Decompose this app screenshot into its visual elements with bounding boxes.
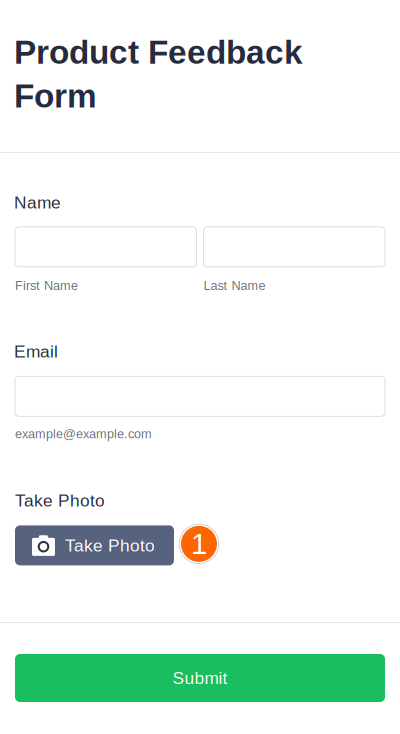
staticText: First Name: [15, 278, 78, 293]
staticText: Submit: [172, 668, 227, 688]
staticText: Product Feedback: [14, 33, 303, 71]
staticText: Email: [14, 342, 58, 361]
staticText: example@example.com: [15, 427, 152, 441]
staticText: Last Name: [203, 278, 265, 293]
button[interactable]: 1 photo attached: [179, 525, 219, 565]
staticText: Take Photo: [15, 491, 105, 510]
button[interactable]: Submit: [15, 654, 385, 702]
staticText: 1: [191, 527, 207, 560]
staticText: Name: [14, 193, 61, 212]
staticText: Form: [14, 77, 97, 114]
button[interactable]: Take Photo: [15, 525, 174, 565]
staticText: Take Photo: [65, 536, 155, 555]
